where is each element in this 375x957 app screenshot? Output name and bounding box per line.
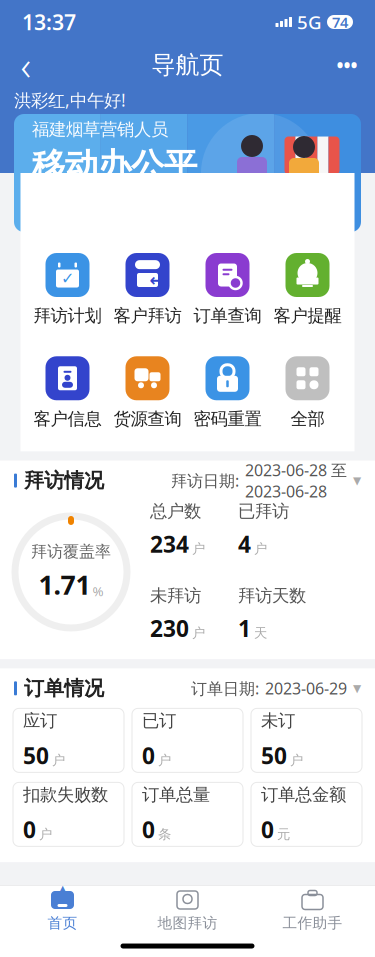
button[interactable]: 订单查询 bbox=[187, 249, 267, 330]
button[interactable]: 客户提醒 bbox=[267, 249, 347, 330]
staticText: 订单总金额 bbox=[261, 784, 346, 805]
staticText: 订单总量 bbox=[142, 784, 210, 805]
staticText: 拜访日期: bbox=[171, 470, 239, 491]
staticText: 客户信息 bbox=[33, 408, 101, 430]
staticText: 0 bbox=[142, 740, 155, 771]
staticText: 1 bbox=[238, 613, 251, 643]
staticText: 未拜访 bbox=[150, 585, 201, 606]
staticText: 客户提醒 bbox=[273, 305, 341, 326]
staticText: 0 bbox=[261, 814, 274, 845]
staticText: 户 bbox=[192, 541, 205, 557]
staticText: ✓ bbox=[61, 269, 74, 288]
staticText: ‹ bbox=[20, 38, 31, 91]
staticText: 应订 bbox=[23, 710, 57, 731]
staticText: 50 bbox=[23, 740, 49, 771]
staticText: 拜访情况 bbox=[24, 468, 104, 493]
staticText: ↩ bbox=[149, 270, 164, 290]
staticText: 230 bbox=[150, 613, 189, 643]
button[interactable]: 地图拜访 bbox=[125, 884, 250, 937]
staticText: 总户数 bbox=[150, 501, 201, 522]
button[interactable]: 工作助手 bbox=[250, 884, 375, 937]
button[interactable]: ↩ bbox=[107, 249, 187, 330]
staticText: 地图拜访 bbox=[157, 914, 217, 932]
staticText: 已订 bbox=[142, 710, 176, 731]
staticText: 条 bbox=[158, 826, 171, 843]
staticText: 洪彩红,中午好! bbox=[14, 88, 126, 111]
staticText: 0 bbox=[142, 814, 155, 845]
staticText: 客户拜访 bbox=[113, 305, 181, 326]
staticText: 户 bbox=[290, 752, 303, 769]
staticText: % bbox=[92, 582, 103, 600]
staticText: 首页 bbox=[47, 914, 77, 932]
staticText: ••• bbox=[336, 53, 357, 77]
staticText: 5G bbox=[297, 10, 322, 34]
staticText: 74 bbox=[332, 12, 348, 32]
staticText: 导航页 bbox=[151, 50, 223, 80]
staticText: ▲ bbox=[56, 881, 68, 900]
staticText: 户 bbox=[158, 752, 171, 769]
staticText: 户 bbox=[254, 541, 267, 557]
staticText: ▼ bbox=[353, 474, 361, 487]
staticText: 2023-06-28 至 2023-06-28 bbox=[245, 459, 347, 502]
staticText: 订单日期: bbox=[191, 678, 259, 699]
staticText: 天 bbox=[254, 625, 267, 641]
button[interactable]: 货源查询 bbox=[107, 352, 187, 434]
staticText: 工作助手 bbox=[282, 914, 342, 932]
staticText: 密码重置 bbox=[193, 408, 261, 430]
button[interactable]: 更多 bbox=[325, 45, 369, 85]
button[interactable]: ✓ bbox=[27, 249, 107, 330]
staticText: 拜访天数 bbox=[238, 585, 306, 606]
staticText: 户 bbox=[39, 826, 52, 843]
staticText: 未订 bbox=[261, 710, 295, 731]
button[interactable]: 全部 bbox=[267, 352, 347, 434]
staticText: 2023-06-29 bbox=[265, 678, 347, 699]
staticText: 0 bbox=[23, 814, 36, 845]
staticText: 拜访覆盖率 bbox=[31, 542, 111, 562]
staticText: 移动办公平台 bbox=[32, 145, 197, 227]
staticText: 拜访计划 bbox=[33, 305, 101, 326]
button[interactable]: 密码重置 bbox=[187, 352, 267, 434]
staticText: 户 bbox=[52, 752, 65, 769]
button[interactable]: 客户信息 bbox=[27, 352, 107, 434]
staticText: 订单情况 bbox=[24, 676, 104, 701]
staticText: 已拜访 bbox=[238, 501, 289, 522]
staticText: 订单查询 bbox=[193, 305, 261, 326]
staticText: 福建烟草营销人员 bbox=[32, 119, 168, 140]
staticText: 货源查询 bbox=[113, 408, 181, 430]
staticText: 元 bbox=[277, 826, 290, 843]
button[interactable]: ▲ bbox=[0, 884, 125, 937]
staticText: 扣款失败数 bbox=[23, 784, 108, 805]
staticText: ▼ bbox=[353, 682, 361, 694]
staticText: 13:37 bbox=[22, 8, 76, 36]
staticText: 234 bbox=[150, 529, 189, 559]
staticText: 4 bbox=[238, 529, 251, 559]
staticText: 50 bbox=[261, 740, 287, 771]
staticText: 户 bbox=[192, 625, 205, 641]
staticText: 1.71 bbox=[38, 567, 90, 602]
button[interactable]: 拜访日期: bbox=[171, 459, 361, 502]
staticText: 全部 bbox=[290, 408, 324, 430]
button[interactable]: 订单日期: bbox=[191, 678, 361, 699]
button[interactable]: 返回 bbox=[6, 45, 46, 85]
